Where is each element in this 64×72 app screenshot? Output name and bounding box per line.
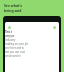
staticText: hat you can cust [5, 50, 25, 54]
staticText: See what's being said [4, 3, 22, 13]
staticText: omize and re [5, 54, 21, 58]
staticText: Industry [5, 38, 16, 42]
staticText: one here and w [5, 46, 24, 50]
staticText: leading on your ph [5, 42, 29, 46]
staticText: very ac [5, 34, 15, 38]
staticText: This t [5, 30, 13, 34]
